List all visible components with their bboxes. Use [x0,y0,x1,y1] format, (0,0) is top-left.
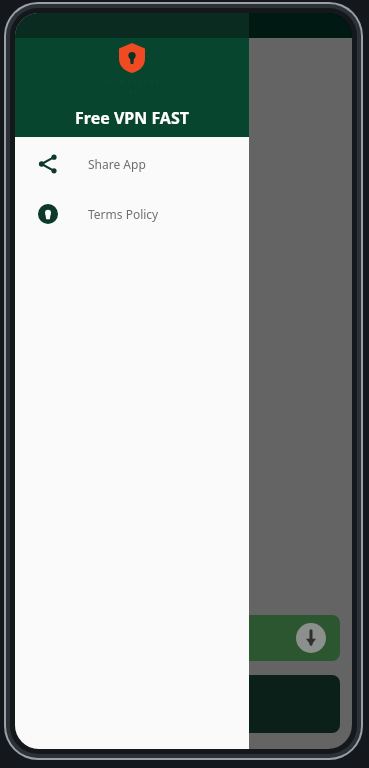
button[interactable]: Share App [15,147,249,181]
staticText: Share App [88,156,146,172]
staticText: Free VPN FAST [75,107,189,129]
staticText: Terms Policy [88,206,159,222]
other: Download [296,623,326,653]
button[interactable]: Connected [27,675,340,733]
button[interactable]: Best Server · 12 MB [27,615,340,661]
button[interactable]: Terms Policy [15,197,249,231]
